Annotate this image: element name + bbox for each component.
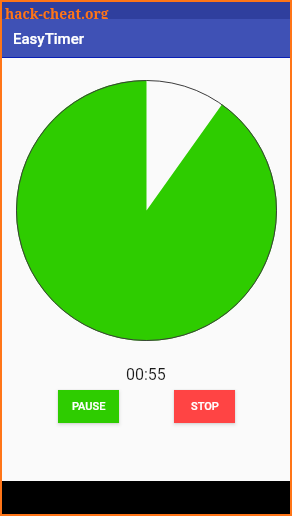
staticText: STOP (191, 400, 219, 413)
staticText: PAUSE (72, 400, 106, 413)
button[interactable]: PAUSE (58, 390, 119, 423)
other: Remaining time (16, 80, 277, 341)
staticText: hack-cheat.org (5, 4, 109, 21)
staticText: EasyTimer (13, 30, 84, 48)
button[interactable]: STOP (174, 390, 235, 423)
staticText: 00:55 (126, 365, 166, 384)
button[interactable]: EasyTimer (2, 19, 290, 58)
